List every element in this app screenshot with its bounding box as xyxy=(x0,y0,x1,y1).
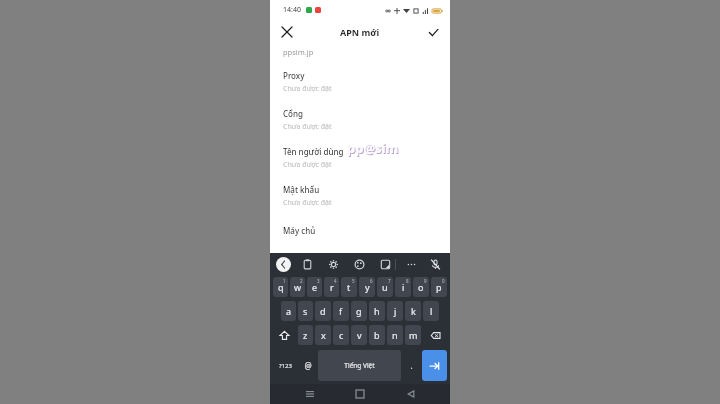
staticText: 9 xyxy=(424,278,427,284)
button[interactable]: s xyxy=(298,301,313,321)
staticText: Mật khẩu xyxy=(283,184,320,195)
staticText: . xyxy=(410,360,413,371)
staticText: k xyxy=(411,305,416,317)
button[interactable]: t xyxy=(341,277,357,297)
staticText: u xyxy=(382,281,388,293)
button[interactable]: x xyxy=(315,325,331,345)
button[interactable]: j xyxy=(387,301,403,321)
staticText: 1 xyxy=(283,278,286,284)
button[interactable]: Save xyxy=(416,20,450,44)
button[interactable]: o xyxy=(413,277,429,297)
staticText: c xyxy=(339,329,344,341)
button[interactable]: r xyxy=(324,277,339,297)
button[interactable]: p xyxy=(431,277,447,297)
staticText: h xyxy=(374,305,380,317)
staticText: 4 xyxy=(334,278,337,284)
button[interactable]: n xyxy=(387,325,403,345)
button[interactable]: Settings xyxy=(327,258,340,271)
button[interactable]: Mật khẩu xyxy=(270,184,450,222)
staticText: ppsim.jp xyxy=(283,47,314,57)
button[interactable]: Theme xyxy=(353,258,366,271)
button[interactable]: q xyxy=(273,277,288,297)
button[interactable]: w xyxy=(290,277,305,297)
staticText: 2 xyxy=(300,278,303,284)
button[interactable]: h xyxy=(369,301,385,321)
button[interactable]: @ xyxy=(299,350,316,381)
button[interactable]: Enter xyxy=(422,350,447,381)
staticText: Chưa được đặt xyxy=(283,122,332,132)
staticText: y xyxy=(365,281,370,293)
staticText: i xyxy=(402,281,405,293)
button[interactable]: Clipboard xyxy=(301,258,314,271)
button[interactable]: Close xyxy=(270,20,304,44)
staticText: 3 xyxy=(317,278,320,284)
staticText: p xyxy=(436,281,442,293)
staticText: w xyxy=(294,281,302,293)
button[interactable]: Recent apps xyxy=(299,384,321,404)
staticText: Chưa được đặt xyxy=(283,160,332,170)
staticText: x xyxy=(321,329,326,341)
button[interactable]: i xyxy=(395,277,411,297)
button[interactable]: Cổng xyxy=(270,108,450,146)
staticText: 8 xyxy=(406,278,409,284)
button[interactable]: ?123 xyxy=(273,350,297,381)
button[interactable]: Shift xyxy=(273,325,296,345)
staticText: o xyxy=(418,281,424,293)
button[interactable]: Tiếng Việt xyxy=(318,350,401,381)
button[interactable]: y xyxy=(359,277,375,297)
button[interactable]: Home xyxy=(349,384,371,404)
button[interactable]: z xyxy=(298,325,313,345)
button[interactable]: e xyxy=(307,277,322,297)
staticText: f xyxy=(339,305,343,317)
staticText: j xyxy=(394,305,397,317)
button[interactable]: a xyxy=(281,301,296,321)
staticText: q xyxy=(278,281,284,293)
button[interactable]: d xyxy=(315,301,331,321)
button[interactable]: c xyxy=(333,325,349,345)
button[interactable]: Back xyxy=(276,257,291,272)
button[interactable]: u xyxy=(377,277,393,297)
staticText: e xyxy=(312,281,318,293)
staticText: APN mới xyxy=(340,26,380,38)
staticText: m xyxy=(409,329,418,341)
staticText: n xyxy=(392,329,398,341)
button[interactable]: Resize xyxy=(379,258,392,271)
staticText: ?123 xyxy=(279,362,292,370)
staticText: v xyxy=(357,329,362,341)
staticText: Chưa được đặt xyxy=(283,198,332,208)
staticText: t xyxy=(347,281,351,293)
staticText: @ xyxy=(304,360,312,371)
button[interactable]: Backspace xyxy=(423,325,447,345)
staticText: s xyxy=(303,305,308,317)
button[interactable]: m xyxy=(405,325,421,345)
staticText: 5 xyxy=(352,278,355,284)
staticText: pp@sim xyxy=(347,139,399,157)
staticText: Proxy xyxy=(283,70,305,81)
staticText: d xyxy=(320,305,326,317)
staticText: 14:40 xyxy=(283,5,301,15)
button[interactable]: . xyxy=(403,350,420,381)
staticText: 7 xyxy=(388,278,391,284)
button[interactable]: Mute microphone xyxy=(429,258,442,271)
button[interactable]: More xyxy=(405,258,418,271)
button[interactable]: f xyxy=(333,301,349,321)
button[interactable]: v xyxy=(351,325,367,345)
staticText: g xyxy=(356,305,362,317)
staticText: z xyxy=(303,329,308,341)
button[interactable]: Tên người dùng xyxy=(270,146,450,184)
button[interactable]: g xyxy=(351,301,367,321)
staticText: Cổng xyxy=(283,108,303,119)
staticText: pp@sim xyxy=(348,140,400,158)
staticText: Máy chủ xyxy=(283,225,316,236)
staticText: Tiếng Việt xyxy=(344,361,375,370)
staticText: a xyxy=(286,305,292,317)
staticText: Chưa được đặt xyxy=(283,84,332,94)
button[interactable]: Máy chủ xyxy=(270,222,450,236)
staticText: 6 xyxy=(370,278,373,284)
button[interactable]: b xyxy=(369,325,385,345)
button[interactable]: l xyxy=(423,301,439,321)
button[interactable]: k xyxy=(405,301,421,321)
button[interactable]: Back xyxy=(400,384,422,404)
staticText: b xyxy=(374,329,380,341)
button[interactable]: Proxy xyxy=(270,70,450,108)
